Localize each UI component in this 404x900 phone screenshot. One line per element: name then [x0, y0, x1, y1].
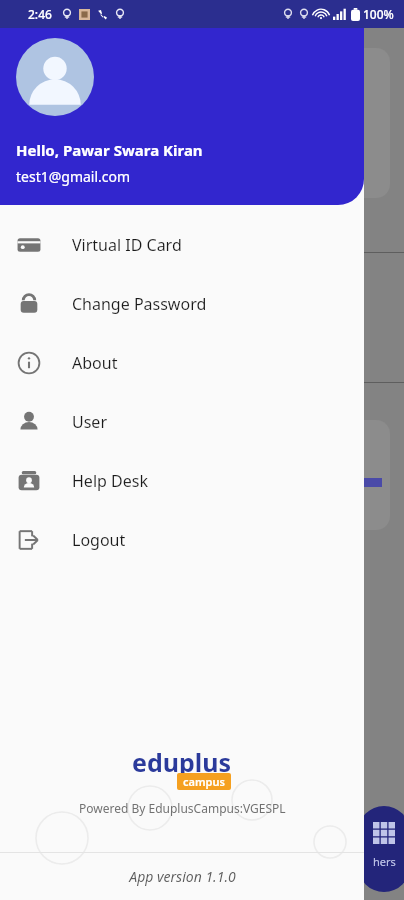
staticText: 100%	[363, 6, 394, 22]
button[interactable]: User	[0, 392, 364, 451]
staticText: eduplus	[132, 745, 232, 779]
staticText: Logout	[72, 529, 126, 551]
button[interactable]: Help Desk	[0, 451, 364, 510]
staticText: Change Password	[72, 293, 207, 315]
button[interactable]: Change Password	[0, 274, 364, 333]
button[interactable]: About	[0, 333, 364, 392]
staticText: App version 1.1.0	[129, 867, 236, 886]
button[interactable]: Virtual ID Card	[0, 215, 364, 274]
staticText: test1@gmail.com	[16, 167, 131, 186]
staticText: 2:46	[28, 6, 52, 22]
staticText: Virtual ID Card	[72, 234, 182, 256]
staticText: Hello, Pawar Swara Kiran	[16, 140, 203, 160]
staticText: Help Desk	[72, 470, 148, 492]
staticText: Powered By EduplusCampus:VGESPL	[79, 800, 286, 816]
staticText: About	[72, 352, 118, 374]
button[interactable]: Logout	[0, 510, 364, 569]
staticText: User	[72, 411, 107, 433]
staticText: campus	[183, 774, 225, 789]
staticText: hers	[373, 854, 396, 869]
